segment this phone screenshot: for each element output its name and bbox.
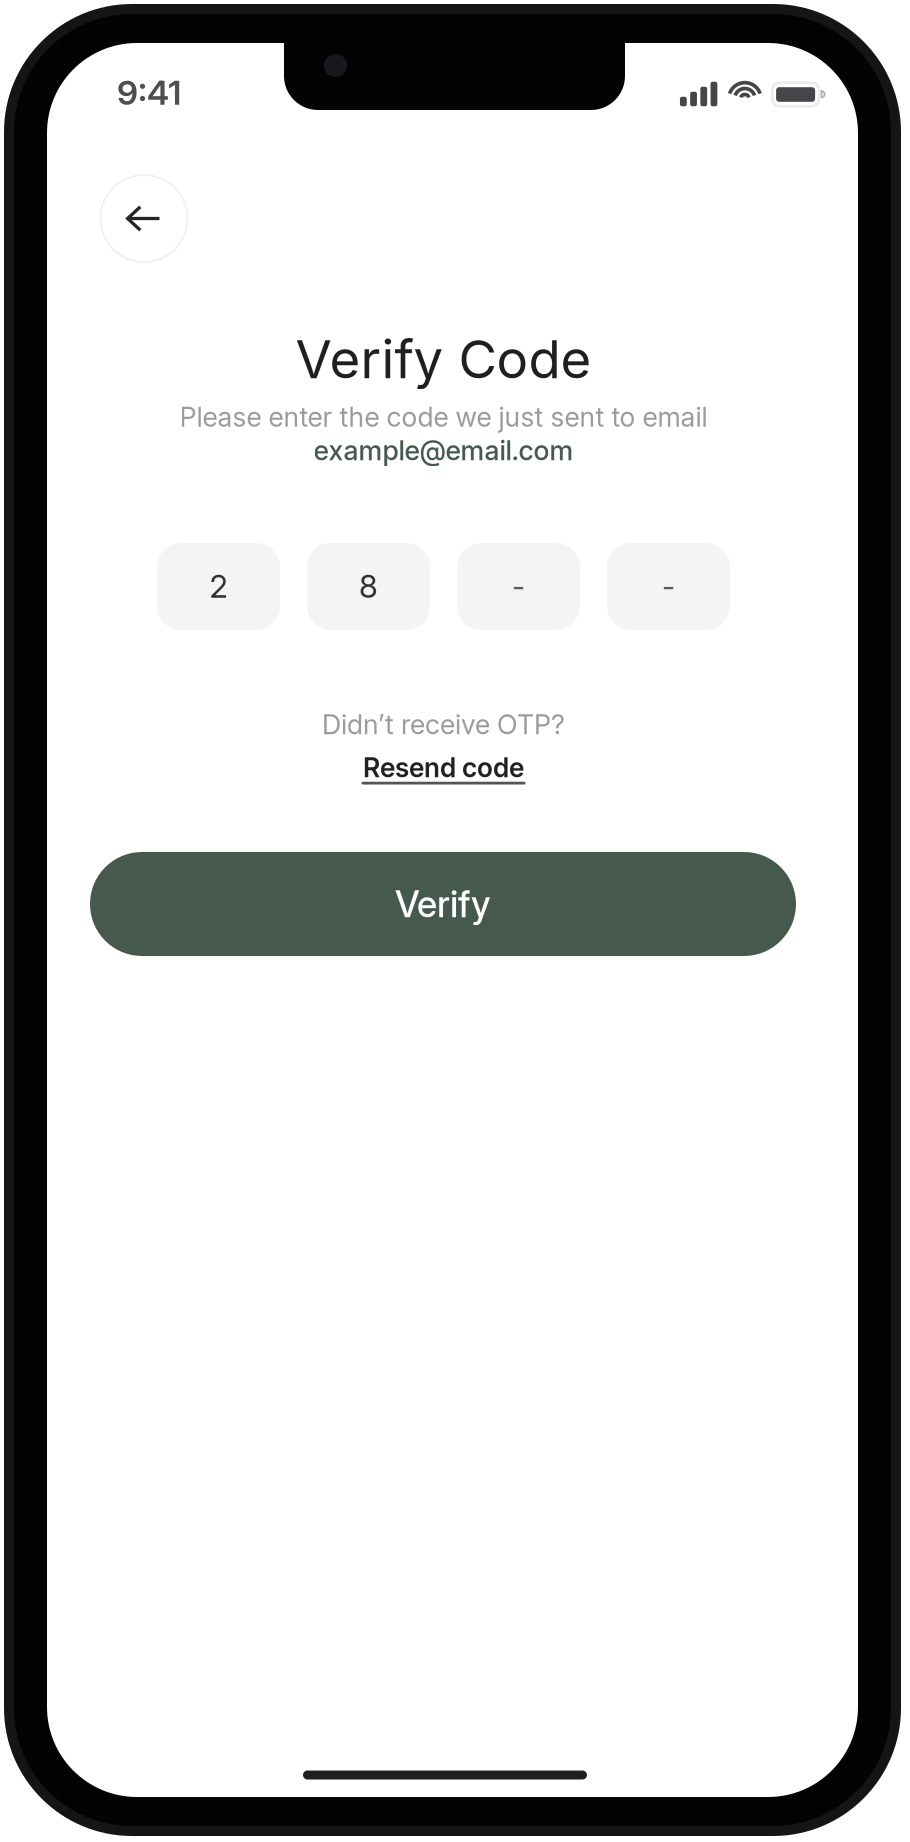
button[interactable]: example@email.com xyxy=(313,434,573,467)
staticText: 2 xyxy=(209,568,227,605)
button[interactable]: Back xyxy=(100,175,187,262)
staticText: Resend code xyxy=(363,751,524,783)
staticText: - xyxy=(512,569,525,604)
button[interactable]: 2 xyxy=(157,543,280,630)
staticText: Please enter the code we just sent to em… xyxy=(179,401,707,433)
staticText: Didn’t receive OTP? xyxy=(322,708,565,741)
staticText: 9:41 xyxy=(117,72,181,113)
button[interactable]: - xyxy=(607,543,730,630)
staticText: example@email.com xyxy=(313,434,573,467)
button[interactable]: 8 xyxy=(307,543,430,630)
button[interactable]: Resend code xyxy=(363,751,524,783)
staticText: Verify Code xyxy=(295,327,591,391)
staticText: 8 xyxy=(359,568,378,605)
button[interactable]: Verify xyxy=(90,852,796,956)
staticText: - xyxy=(662,569,675,604)
button[interactable]: - xyxy=(457,543,580,630)
staticText: Verify xyxy=(395,882,491,926)
